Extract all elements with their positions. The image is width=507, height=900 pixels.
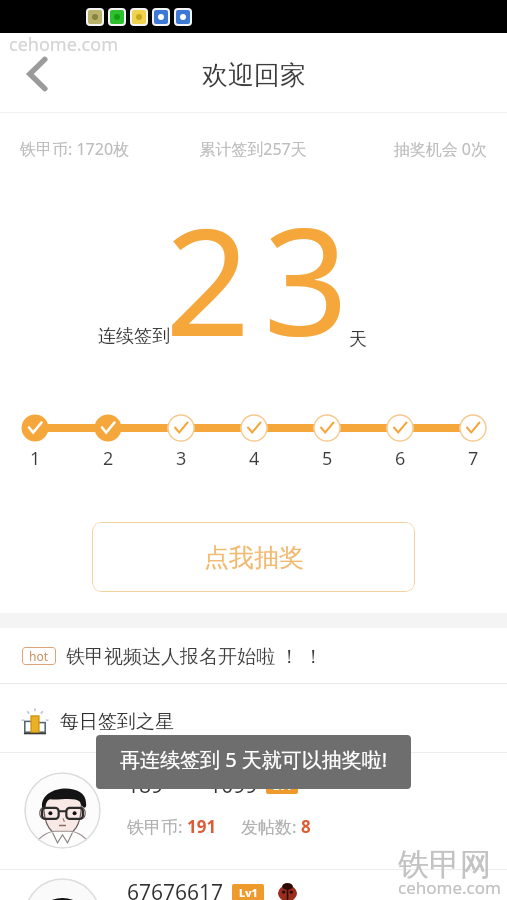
staticText: 每日签到之星 [60,710,174,734]
staticText: 23 [165,177,362,380]
staticText: 191 [187,815,217,838]
staticText: 67676617 [127,878,224,900]
staticText: 抽奖机会 0次 [331,138,487,160]
staticText: 189****1099 [127,771,258,800]
staticText: cehome.com [9,32,118,57]
staticText: 铁甲视频达人报名开始啦 ！ ！ [66,643,323,669]
staticText: 4 [249,446,260,471]
staticText: 2 [103,446,114,471]
staticText: 铁甲币: 1720枚 [20,138,175,160]
staticText: 天 [349,328,367,351]
staticText: 连续签到 [98,325,170,348]
button[interactable]: hot [0,628,507,683]
staticText: 3 [176,446,187,471]
staticText: 7 [468,446,479,471]
button[interactable]: Back [8,44,68,104]
staticText: 欢迎回家 [202,59,306,92]
staticText: 发帖数: [241,815,301,838]
staticText: 点我抽奖 [204,542,304,573]
staticText: 6 [395,446,406,471]
button[interactable]: 189****1099 [0,753,507,869]
staticText: 累计签到257天 [175,138,331,160]
staticText: hot [29,648,49,664]
staticText: 8 [301,815,311,838]
staticText: 铁甲币: [127,815,187,838]
staticText: 铁甲网 [398,845,491,884]
staticText: 5 [322,446,333,471]
staticText: Lv1 [239,885,258,900]
staticText: 再连续签到 5 天就可以抽奖啦! [120,746,388,773]
staticText: cehome.com [398,876,501,899]
staticText: Lv1 [273,778,292,793]
button[interactable]: 67676617 [127,878,297,900]
staticText: 1 [30,446,41,471]
button[interactable]: 点我抽奖 [92,522,415,592]
